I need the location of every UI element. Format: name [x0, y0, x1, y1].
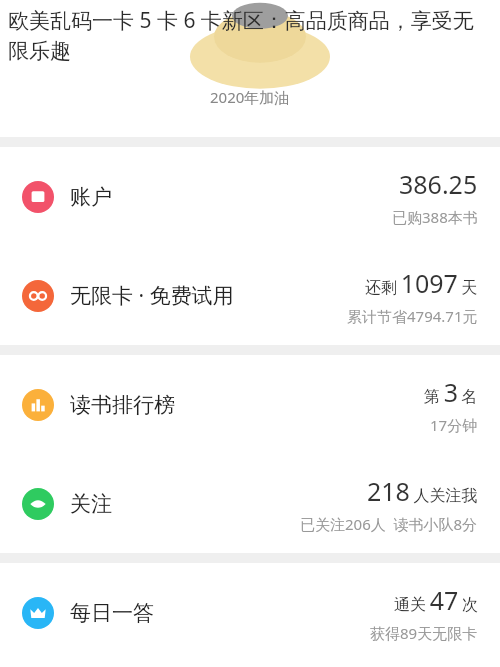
- staticText: 读书排行榜: [70, 392, 175, 418]
- button[interactable]: 关注: [0, 454, 500, 553]
- button[interactable]: 无限卡 · 免费试用: [0, 246, 500, 345]
- staticText: 无限卡 · 免费试用: [70, 281, 234, 310]
- staticText: 已购388本书: [392, 207, 478, 227]
- staticText: 2020年加油: [210, 87, 290, 107]
- staticText: 17分钟: [430, 415, 478, 435]
- staticText: 每日一答: [70, 600, 154, 626]
- staticText: 还剩 1097 天: [365, 266, 478, 300]
- staticText: 累计节省4794.71元: [347, 306, 478, 326]
- staticText: 218 人关注我: [367, 474, 478, 508]
- staticText: 已关注206人 读书小队8分: [300, 514, 478, 534]
- staticText: 通关 47 次: [394, 583, 478, 617]
- staticText: 第 3 名: [424, 375, 478, 409]
- staticText: 386.25: [399, 167, 478, 201]
- staticText: 获得89天无限卡: [370, 623, 478, 643]
- staticText: 欧美乱码一卡 5 卡 6 卡新区：高品质商品，享受无限乐趣: [8, 6, 492, 65]
- button[interactable]: 读书排行榜: [0, 355, 500, 454]
- staticText: 关注: [70, 491, 112, 517]
- staticText: 账户: [70, 184, 112, 210]
- button[interactable]: 账户: [0, 147, 500, 246]
- button[interactable]: 每日一答: [0, 563, 500, 662]
